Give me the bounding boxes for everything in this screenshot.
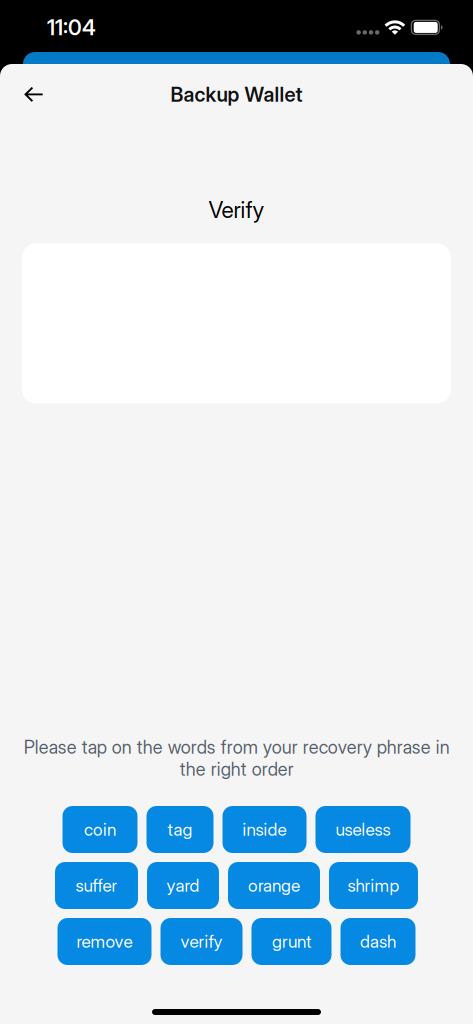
- staticText: inside: [242, 819, 286, 840]
- staticText: verify: [180, 931, 222, 952]
- staticText: suffer: [75, 875, 117, 896]
- staticText: Verify: [208, 196, 264, 223]
- staticText: dash: [360, 931, 396, 952]
- button[interactable]: coin: [62, 806, 137, 853]
- button[interactable]: useless: [315, 806, 410, 853]
- staticText: remove: [76, 931, 132, 952]
- staticText: yard: [166, 875, 199, 896]
- staticText: coin: [84, 819, 116, 840]
- staticText: 11:04: [47, 14, 96, 40]
- staticText: orange: [248, 875, 300, 896]
- staticText: Backup Wallet: [170, 82, 302, 107]
- button[interactable]: yard: [147, 862, 219, 909]
- button[interactable]: shrimp: [329, 862, 418, 909]
- staticText: useless: [335, 819, 390, 840]
- button[interactable]: Back: [12, 72, 56, 116]
- button[interactable]: inside: [222, 806, 306, 853]
- staticText: tag: [167, 819, 192, 840]
- button[interactable]: suffer: [55, 862, 138, 909]
- button[interactable]: verify: [160, 918, 242, 965]
- button[interactable]: tag: [146, 806, 213, 853]
- button[interactable]: remove: [57, 918, 151, 965]
- staticText: shrimp: [347, 875, 399, 896]
- button[interactable]: dash: [340, 918, 415, 965]
- staticText: grunt: [272, 931, 311, 952]
- staticText: Please tap on the words from your recove…: [23, 736, 449, 780]
- button[interactable]: orange: [228, 862, 320, 909]
- button[interactable]: grunt: [251, 918, 331, 965]
